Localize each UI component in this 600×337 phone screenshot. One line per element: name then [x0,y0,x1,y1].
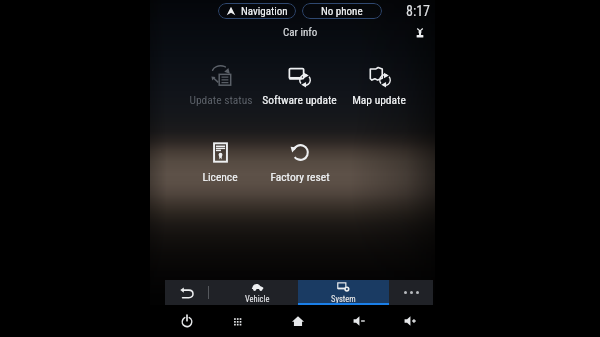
staticText: Factory reset [270,170,330,183]
staticText: Navigation [241,5,288,18]
button[interactable]: Navigation [218,3,296,19]
staticText: Update status [189,93,253,106]
other: Vehicle status [414,27,426,39]
button[interactable]: Update status [176,64,266,106]
staticText: Map update [352,93,406,106]
button[interactable]: Volume up [388,306,434,336]
button[interactable]: Home [275,306,321,336]
button[interactable]: Back [165,280,208,305]
button[interactable]: Volume down [337,306,383,336]
button[interactable]: No phone [302,3,382,19]
button[interactable]: Map update [334,64,424,106]
button[interactable]: Apps [215,306,261,336]
button[interactable]: System [298,280,389,305]
button[interactable]: Factory reset [255,141,345,183]
button[interactable]: Software update [254,64,344,106]
button[interactable]: Vehicle [212,280,302,305]
staticText: 8:17 [406,3,431,19]
staticText: Software update [262,93,337,106]
button[interactable]: Licence [175,141,265,183]
staticText: System [331,294,356,304]
staticText: No phone [321,5,363,18]
staticText: Car info [283,26,318,39]
button[interactable]: More options [389,280,433,305]
staticText: Vehicle [245,294,270,304]
button[interactable]: Power [164,306,210,336]
staticText: Licence [202,170,238,183]
